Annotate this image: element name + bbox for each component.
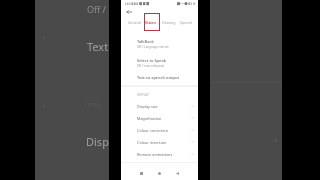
button[interactable]: Magnification [121,112,198,124]
button[interactable]: Hearing [161,18,176,26]
staticText: Colour inversion [137,140,167,145]
button[interactable]: General [127,18,142,26]
staticText: Text [87,39,109,54]
button[interactable]: Remove animations [121,148,198,160]
button[interactable]: Display size [121,100,198,112]
button[interactable]: Back [171,167,183,179]
staticText: Speech [180,20,193,25]
button[interactable]: Colour correction [121,124,198,136]
staticText: Remove animations [137,152,173,157]
staticText: Text-to-speech output [137,75,179,80]
staticText: Vision [145,20,156,25]
staticText: Off / [87,3,109,15]
button[interactable]: Recent apps [135,167,147,179]
button[interactable]: Home [153,167,165,179]
button[interactable]: Colour inversion [121,136,198,148]
button[interactable]: TalkBack [121,36,198,53]
staticText: DISPLAY [137,93,149,97]
button[interactable]: Select to Speak [121,55,198,72]
staticText: TalkBack [137,39,154,44]
button[interactable]: Speech [179,18,194,26]
staticText: Display size [137,104,158,109]
staticText: Disp [86,134,109,149]
staticText: Select to Speak [137,58,166,63]
staticText: Off / Language not set [137,45,169,49]
button[interactable]: Vision [143,18,158,26]
button[interactable]: Text-to-speech output [121,72,198,84]
staticText: Off / now rehearsal [137,64,165,68]
button[interactable]: Back [123,6,134,17]
staticText: DISPL [85,101,102,109]
staticText: Hearing [162,20,176,25]
staticText: General [128,20,142,25]
staticText: Colour correction [137,128,169,133]
staticText: Magnification [137,116,162,121]
